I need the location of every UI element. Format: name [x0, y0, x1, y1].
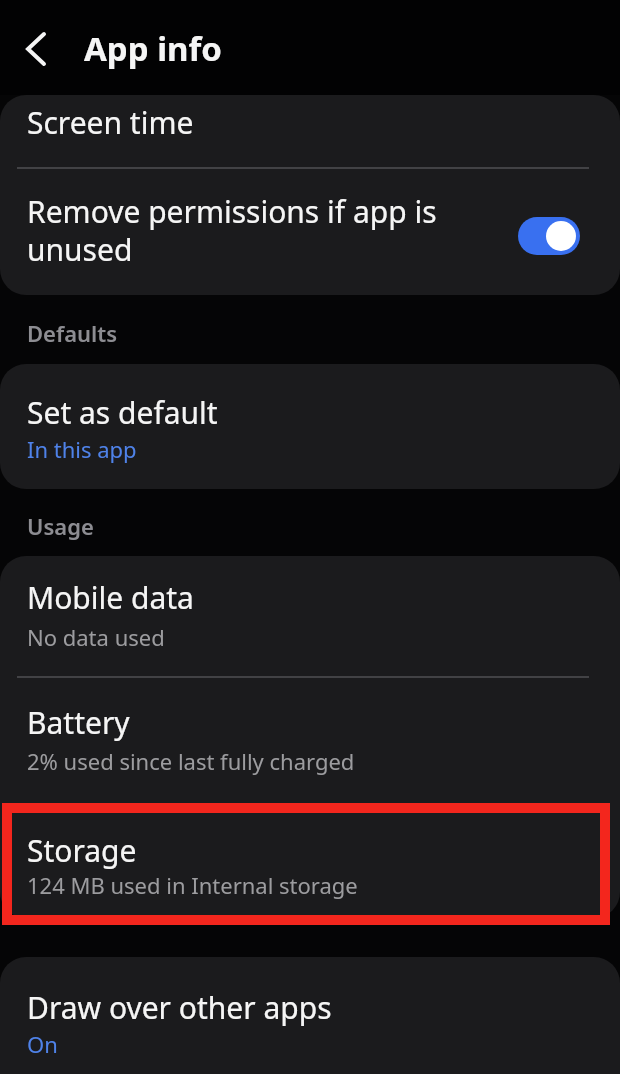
staticText: Storage — [27, 830, 137, 871]
button[interactable] — [0, 802, 620, 918]
button[interactable] — [0, 556, 620, 676]
staticText: Set as default — [27, 392, 218, 433]
staticText: Screen time — [27, 102, 194, 143]
button[interactable] — [518, 217, 580, 255]
staticText: Battery — [27, 702, 130, 743]
staticText: 124 MB used in Internal storage — [27, 870, 358, 900]
button[interactable]: Set as default — [0, 364, 620, 489]
button[interactable] — [0, 678, 620, 802]
button[interactable] — [14, 25, 62, 73]
staticText: Mobile data — [27, 577, 194, 618]
button[interactable] — [0, 167, 620, 295]
staticText: Remove permissions if app is — [27, 191, 437, 232]
staticText: No data used — [27, 622, 165, 652]
staticText: Usage — [27, 511, 94, 541]
staticText: Draw over other apps — [27, 987, 332, 1028]
staticText: In this app — [27, 434, 137, 464]
button[interactable]: Draw over other apps — [0, 957, 620, 1074]
button[interactable] — [0, 95, 620, 166]
staticText: unused — [27, 229, 133, 270]
staticText: 2% used since last fully charged — [27, 746, 355, 776]
staticText: Defaults — [27, 318, 118, 348]
staticText: On — [27, 1029, 58, 1059]
staticText: App info — [84, 26, 222, 71]
